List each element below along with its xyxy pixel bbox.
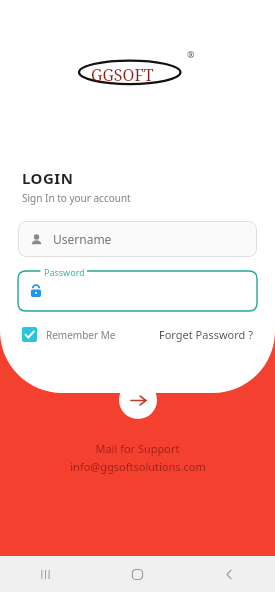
staticText: Username xyxy=(53,231,112,247)
staticText: info@ggsoftsolutions.com xyxy=(70,459,206,474)
button[interactable]: Login xyxy=(119,381,157,419)
button[interactable]: Remember Me xyxy=(22,327,116,342)
button[interactable]: Username xyxy=(18,221,257,257)
button[interactable]: Back xyxy=(183,556,275,592)
button[interactable]: Home xyxy=(91,556,183,592)
staticText: ® xyxy=(187,48,195,60)
staticText: Password xyxy=(44,266,85,278)
button[interactable] xyxy=(18,271,257,311)
button[interactable]: info@ggsoftsolutions.com xyxy=(70,459,206,474)
button[interactable]: Recent apps xyxy=(0,556,91,592)
staticText: LOGIN xyxy=(22,168,74,188)
staticText: Forget Password ? xyxy=(159,327,253,342)
staticText: GGSOFT xyxy=(91,64,154,86)
staticText: Mail for Support xyxy=(95,441,180,456)
staticText: Remember Me xyxy=(46,328,116,342)
button[interactable]: Forget Password ? xyxy=(159,327,253,342)
staticText: Sign In to your account xyxy=(22,191,131,205)
